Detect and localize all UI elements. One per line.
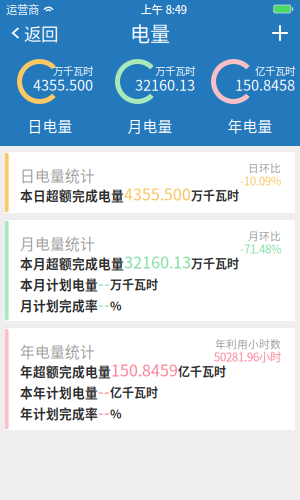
staticText: -- xyxy=(98,271,110,294)
staticText: -- xyxy=(98,292,110,315)
staticText: 年电量统计 xyxy=(20,340,95,362)
staticText: 万千瓦时 xyxy=(191,255,239,272)
staticText: -71.48% xyxy=(240,240,281,257)
staticText: 万千瓦时 xyxy=(110,276,158,293)
staticText: -10.09% xyxy=(240,172,281,189)
staticText: 本月超额完成电量 xyxy=(20,254,124,272)
staticText: 50281.96小时 xyxy=(214,348,281,365)
staticText: 月电量 xyxy=(127,115,172,136)
staticText: 150.8458 xyxy=(235,74,295,95)
staticText: 4355.500 xyxy=(33,74,93,95)
button[interactable]: 添加 xyxy=(222,18,300,48)
staticText: 亿千瓦时 xyxy=(178,363,226,380)
staticText: 万千瓦时 xyxy=(191,187,239,204)
staticText: 电量 xyxy=(130,18,170,47)
staticText: 150.8459 xyxy=(111,358,178,381)
staticText: 月电量统计 xyxy=(20,232,95,254)
staticText: 本年计划电量 xyxy=(20,383,98,401)
staticText: 4355.500 xyxy=(124,182,191,205)
staticText: -- xyxy=(98,379,110,402)
staticText: 月环比 xyxy=(248,228,281,243)
staticText: 本月计划电量 xyxy=(20,275,98,293)
staticText: 年电量 xyxy=(227,115,272,136)
staticText: 月计划完成率 xyxy=(20,296,98,314)
staticText: 万千瓦时 xyxy=(155,63,195,78)
staticText: % xyxy=(110,405,122,422)
staticText: 年超额完成电量 xyxy=(20,362,111,380)
staticText: 亿千瓦时 xyxy=(110,384,158,401)
staticText: 日环比 xyxy=(248,160,281,175)
staticText: 亿千瓦时 xyxy=(255,63,295,78)
staticText: 日电量统计 xyxy=(20,164,95,186)
staticText: 运营商 xyxy=(6,1,39,17)
staticText: 32160.13 xyxy=(124,250,191,273)
staticText: 上午 8:49 xyxy=(140,1,186,17)
staticText: 日电量 xyxy=(27,115,72,136)
staticText: 年计划完成率 xyxy=(20,404,98,422)
staticText: 本日超额完成电量 xyxy=(20,186,124,204)
staticText: 万千瓦时 xyxy=(53,63,93,78)
staticText: 返回 xyxy=(24,20,58,46)
staticText: % xyxy=(110,297,122,314)
staticText: 32160.13 xyxy=(135,74,195,95)
staticText: 年利用小时数 xyxy=(215,336,281,351)
staticText: -- xyxy=(98,400,110,423)
button[interactable]: 返回 xyxy=(0,18,78,48)
